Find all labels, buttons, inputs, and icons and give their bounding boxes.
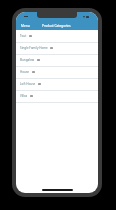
- staticText: Menu: [21, 24, 30, 28]
- staticText: House: [20, 70, 30, 74]
- button[interactable]: Menu: [16, 22, 35, 30]
- button[interactable]: Tout: [16, 30, 98, 43]
- staticText: Villas: [20, 94, 28, 98]
- staticText: Single Family Home: [20, 46, 48, 50]
- staticText: Tout: [20, 34, 27, 38]
- staticText: Product Categories: [42, 24, 71, 28]
- button[interactable]: Villas: [16, 91, 98, 103]
- button[interactable]: Bungalow: [16, 55, 98, 67]
- button[interactable]: House: [16, 67, 98, 79]
- staticText: Bungalow: [20, 58, 35, 62]
- staticText: Loft House: [20, 82, 36, 86]
- button[interactable]: Single Family Home: [16, 43, 98, 55]
- button[interactable]: Loft House: [16, 79, 98, 91]
